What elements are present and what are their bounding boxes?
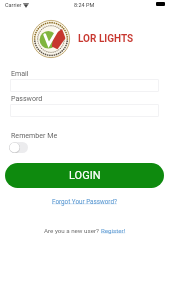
staticText: Email: [11, 69, 29, 77]
button[interactable]: LOGIN: [5, 163, 164, 188]
button[interactable]: [10, 79, 159, 92]
staticText: Forgot Your Password?: [52, 198, 117, 205]
button[interactable]: Remember me toggle: [9, 142, 28, 153]
button[interactable]: Forgot Your Password?: [50, 197, 119, 206]
staticText: Are you a new user?: [44, 227, 101, 234]
staticText: LOR LIGHTS: [78, 33, 134, 45]
staticText: Register!: [101, 227, 126, 234]
staticText: Password: [11, 94, 43, 102]
other: Lor Lights logo: [32, 20, 70, 58]
staticText: Carrier: [5, 2, 22, 8]
staticText: Remember Me: [11, 131, 58, 139]
button[interactable]: [10, 104, 159, 117]
staticText: LOGIN: [69, 169, 101, 182]
staticText: 8:24 PM: [74, 2, 95, 8]
button[interactable]: Register!: [101, 227, 126, 234]
